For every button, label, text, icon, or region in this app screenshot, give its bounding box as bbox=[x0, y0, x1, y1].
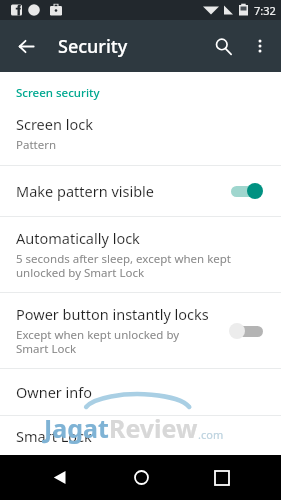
staticText: Automatically lock bbox=[16, 228, 140, 248]
button[interactable]: Make pattern visible bbox=[0, 166, 281, 216]
staticText: Review bbox=[109, 411, 198, 445]
staticText: 5 seconds after sleep, except when kept … bbox=[16, 251, 232, 281]
button[interactable]: Screen lock bbox=[0, 114, 281, 165]
staticText: Make pattern visible bbox=[16, 181, 229, 201]
staticText: Screen lock bbox=[16, 114, 93, 134]
button[interactable]: Automatically lock bbox=[0, 217, 281, 292]
staticText: Except when kept unlocked by Smart Lock bbox=[16, 327, 180, 357]
button[interactable]: Power button instantly locks bbox=[0, 293, 281, 368]
button[interactable]: Owner info bbox=[0, 369, 281, 415]
staticText: Owner info bbox=[16, 382, 93, 402]
button[interactable]: Smart Lock bbox=[0, 416, 281, 455]
staticText: Pattern bbox=[16, 137, 57, 153]
staticText: Screen security bbox=[16, 85, 100, 101]
staticText: Smart Lock bbox=[16, 426, 92, 446]
button[interactable]: Back bbox=[6, 26, 46, 66]
staticText: Power button instantly locks bbox=[16, 304, 209, 324]
staticText: .com bbox=[198, 427, 224, 442]
button[interactable]: Home bbox=[118, 455, 164, 500]
button[interactable]: Recent apps bbox=[199, 455, 245, 500]
staticText: Jagat bbox=[44, 411, 109, 445]
button[interactable]: More options bbox=[243, 29, 277, 63]
staticText: 7:32 bbox=[254, 3, 276, 18]
staticText: Security bbox=[58, 34, 128, 59]
button[interactable]: Search bbox=[203, 26, 243, 66]
button[interactable]: Back bbox=[36, 455, 82, 500]
